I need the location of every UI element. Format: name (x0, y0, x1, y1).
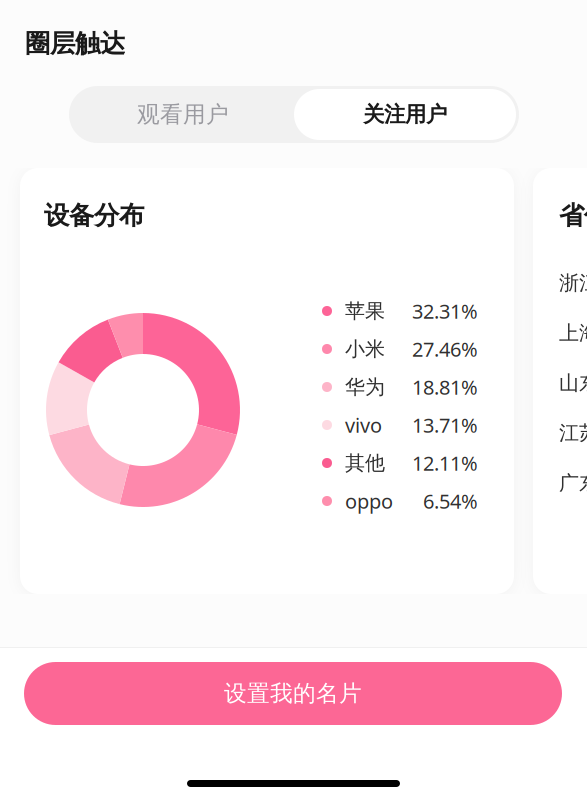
staticText: 32.31% (412, 298, 478, 324)
button[interactable]: 设置我的名片 (24, 662, 562, 725)
button[interactable]: 观看用户 (72, 89, 294, 140)
staticText: 设备分布 (44, 200, 144, 231)
staticText: 27.46% (412, 336, 478, 362)
staticText: 圈层触达 (25, 28, 125, 59)
staticText: oppo (345, 488, 393, 514)
staticText: 省份分布 (559, 200, 587, 231)
button[interactable]: 设备分布 (20, 168, 514, 594)
staticText: 江苏省 (559, 421, 587, 445)
staticText: 12.11% (412, 450, 478, 476)
staticText: vivo (345, 412, 382, 438)
staticText: 观看用户 (137, 101, 229, 128)
staticText: 山东省 (559, 371, 587, 395)
staticText: 广东省 (559, 471, 587, 495)
staticText: 关注用户 (363, 101, 447, 128)
staticText: 其他 (345, 451, 385, 475)
staticText: 18.81% (412, 374, 478, 400)
button[interactable]: 省份分布 (533, 168, 587, 594)
staticText: 小米 (345, 337, 385, 361)
staticText: 6.54% (423, 488, 478, 514)
staticText: 苹果 (345, 299, 385, 323)
staticText: 华为 (345, 375, 385, 399)
staticText: 13.71% (412, 412, 478, 438)
staticText: 浙江省 (559, 271, 587, 295)
button[interactable]: 关注用户 (294, 89, 516, 140)
staticText: 上海市 (559, 321, 587, 345)
staticText: 设置我的名片 (224, 680, 362, 707)
